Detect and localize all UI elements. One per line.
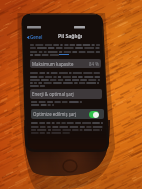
button[interactable]: Optimize edilmiş şarj, açık [89,111,99,118]
staticText: Genel [30,34,43,40]
staticText: 84 % [89,61,99,67]
staticText: Enerji & optimal şarj [32,91,74,97]
button[interactable]: Maksimum kapasite [30,59,101,68]
button[interactable]: Optimize edilmiş şarj [31,109,104,119]
button[interactable]: Geri, Genel [26,33,44,41]
staticText: Pil Sağlığı [58,32,83,39]
button[interactable]: Enerji & optimal şarj [30,89,102,99]
staticText: Optimize edilmiş şarj [33,111,77,117]
staticText: Maksimum kapasite [32,61,74,67]
